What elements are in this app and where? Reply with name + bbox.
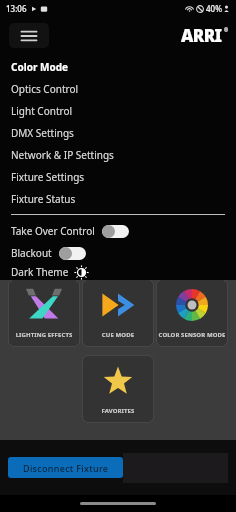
button[interactable]: Blackout bbox=[0, 242, 236, 264]
staticText: ARRI bbox=[181, 24, 222, 47]
staticText: Fixture Status bbox=[11, 192, 76, 206]
staticText: Network & IP Settings bbox=[11, 148, 114, 162]
staticText: Blackout bbox=[11, 246, 52, 260]
staticText: Dark Theme bbox=[11, 265, 69, 279]
button[interactable]: FAVORITES bbox=[82, 355, 154, 423]
staticText: Disconnect Fixture bbox=[23, 462, 109, 474]
staticText: Optics Control bbox=[11, 82, 79, 96]
staticText: 40% bbox=[206, 3, 222, 14]
button[interactable]: CUE MODE bbox=[82, 279, 154, 347]
button[interactable]: Disconnect Fixture bbox=[8, 457, 123, 478]
button[interactable]: Color Mode bbox=[0, 56, 236, 78]
button[interactable]: Dark Theme bbox=[0, 264, 236, 280]
button[interactable]: Light Control bbox=[0, 100, 236, 122]
staticText: Take Over Control bbox=[11, 224, 95, 238]
button[interactable]: COLOR SENSOR MODE bbox=[156, 279, 228, 347]
staticText: Color Mode bbox=[11, 60, 68, 74]
staticText: Fixture Settings bbox=[11, 170, 85, 184]
staticText: LIGHTING EFFECTS bbox=[8, 331, 80, 339]
button[interactable]: Open navigation menu bbox=[9, 23, 49, 48]
staticText: Light Control bbox=[11, 104, 73, 118]
button[interactable]: Optics Control bbox=[0, 78, 236, 100]
button[interactable]: Take Over Control bbox=[0, 220, 236, 242]
button[interactable]: Fixture Settings bbox=[0, 166, 236, 188]
button[interactable]: Network & IP Settings bbox=[0, 144, 236, 166]
staticText: DMX Settings bbox=[11, 126, 74, 140]
staticText: FAVORITES bbox=[82, 407, 154, 415]
staticText: CUE MODE bbox=[82, 331, 154, 339]
staticText: ® bbox=[224, 27, 229, 34]
staticText: COLOR SENSOR MODE bbox=[156, 331, 228, 339]
button[interactable]: Fixture Status bbox=[0, 188, 236, 210]
staticText: 13:06 bbox=[6, 3, 27, 14]
button[interactable]: LIGHTING EFFECTS bbox=[8, 279, 80, 347]
button[interactable]: DMX Settings bbox=[0, 122, 236, 144]
